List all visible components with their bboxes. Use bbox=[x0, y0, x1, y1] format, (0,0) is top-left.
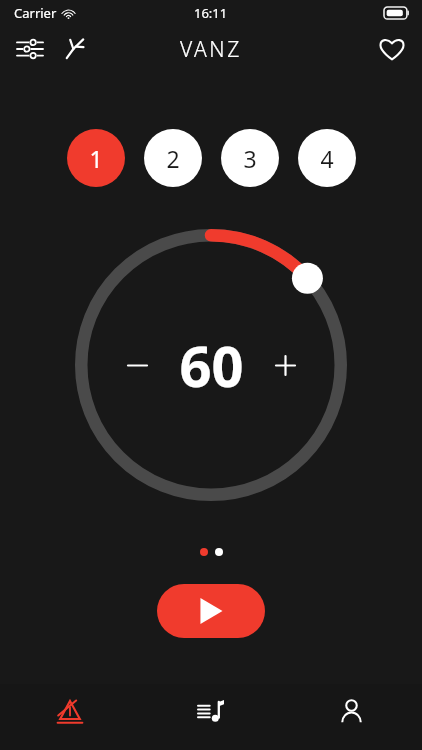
button[interactable]: Favorite bbox=[370, 27, 414, 71]
staticText: 4 bbox=[320, 143, 334, 174]
button[interactable]: 4 bbox=[298, 129, 356, 187]
button[interactable]: Play bbox=[157, 584, 265, 638]
button[interactable]: Increase tempo bbox=[263, 343, 307, 387]
staticText: 2 bbox=[166, 143, 180, 174]
button[interactable]: Metronome bbox=[0, 684, 140, 738]
staticText: 60 bbox=[179, 327, 244, 403]
staticText: Carrier bbox=[14, 4, 57, 22]
button[interactable]: 2 bbox=[144, 129, 202, 187]
button[interactable] bbox=[215, 548, 223, 556]
button[interactable]: Tuner bbox=[52, 27, 96, 71]
staticText: 3 bbox=[243, 143, 257, 174]
button[interactable]: Songs bbox=[140, 684, 281, 738]
button[interactable] bbox=[200, 548, 208, 556]
staticText: 16:11 bbox=[194, 4, 228, 22]
staticText: 1 bbox=[89, 143, 103, 174]
button[interactable]: 3 bbox=[221, 129, 279, 187]
button[interactable]: 1 bbox=[67, 129, 125, 187]
button[interactable]: Profile bbox=[281, 684, 422, 738]
button[interactable]: Decrease tempo bbox=[115, 343, 159, 387]
button[interactable]: Settings bbox=[8, 27, 52, 71]
staticText: VANZ bbox=[180, 35, 242, 64]
